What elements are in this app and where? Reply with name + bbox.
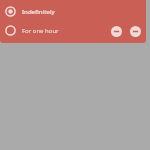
button[interactable]: For one hour xyxy=(0,22,146,39)
staticText: For one hour xyxy=(22,27,109,35)
button[interactable]: Decrease duration xyxy=(109,24,123,38)
staticText: Indefinitely xyxy=(22,8,142,16)
button[interactable]: Increase duration xyxy=(128,24,142,38)
button[interactable]: Indefinitely xyxy=(0,3,146,20)
